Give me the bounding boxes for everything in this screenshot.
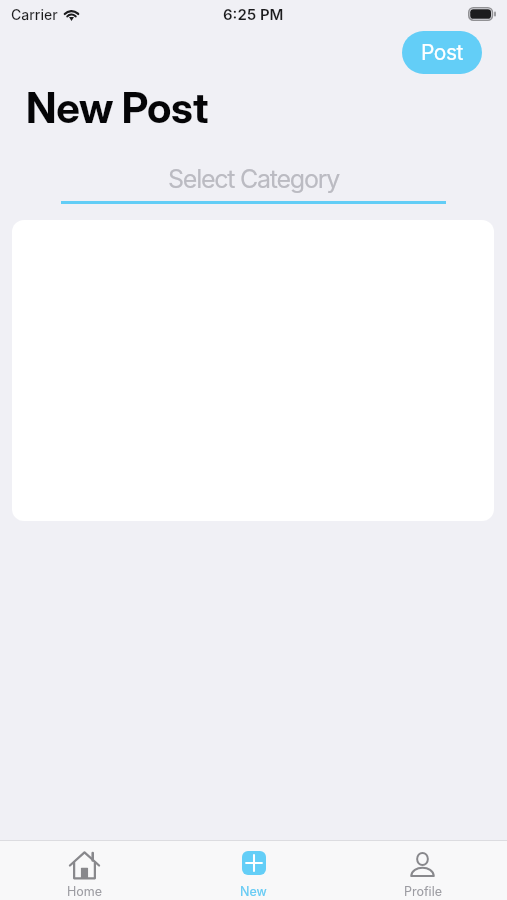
button[interactable]: Home (0, 841, 169, 900)
button[interactable]: Select Category (61, 162, 446, 204)
button[interactable]: Profile (338, 841, 507, 900)
staticText: Carrier (11, 6, 58, 23)
button[interactable]: Post (402, 31, 482, 74)
staticText: Select Category (61, 164, 446, 194)
other: Wi-Fi (63, 9, 80, 21)
staticText: Profile (404, 884, 442, 899)
staticText: 6:25 PM (223, 5, 284, 23)
staticText: New (240, 884, 267, 899)
other: Battery (468, 7, 496, 21)
staticText: Post (421, 40, 463, 65)
staticText: New Post (26, 82, 209, 133)
staticText: Home (67, 884, 103, 899)
button[interactable]: New (169, 841, 338, 900)
